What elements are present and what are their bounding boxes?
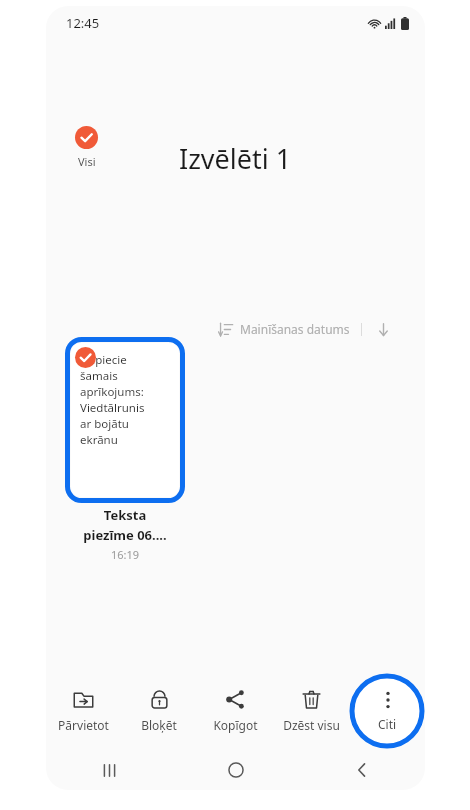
staticText: Bloķēt [141,717,177,733]
staticText: Citi [378,716,397,732]
staticText: Viedtālrunis [80,400,145,416]
button[interactable]: Back [299,750,425,790]
staticText: Kopīgot [213,717,258,733]
staticText: ekrānu [80,432,118,448]
staticText: Mainīšanas datums [240,321,350,337]
button[interactable]: Home [173,750,299,790]
staticText: šamais [80,368,118,384]
button[interactable]: Kopīgot [197,669,273,753]
staticText: Izvēlēti 1 [179,140,292,177]
button[interactable]: Citi [349,670,425,752]
staticText: aprīkojums: [80,384,144,400]
staticText: 16:19 [111,547,140,562]
staticText: 12:45 [66,14,100,32]
staticText: Dzēst visu [283,717,340,733]
staticText: Pārvietot [58,717,109,733]
staticText: Nepiecie [80,352,127,368]
button[interactable]: Pārvietot [46,669,121,753]
staticText: Teksta piezīme 06.... [83,506,167,544]
button[interactable]: Nepiecie [71,343,179,497]
staticText: Visi [78,154,96,169]
button[interactable]: Recents [46,750,173,790]
button[interactable]: Visi [71,124,102,171]
other: Selected [75,347,96,368]
staticText: ar bojātu [80,416,129,432]
button[interactable]: Mainīšanas datums [214,317,395,341]
button[interactable]: Dzēst visu [273,669,349,753]
other: Sort direction [376,322,391,337]
button[interactable]: Bloķēt [121,669,197,753]
